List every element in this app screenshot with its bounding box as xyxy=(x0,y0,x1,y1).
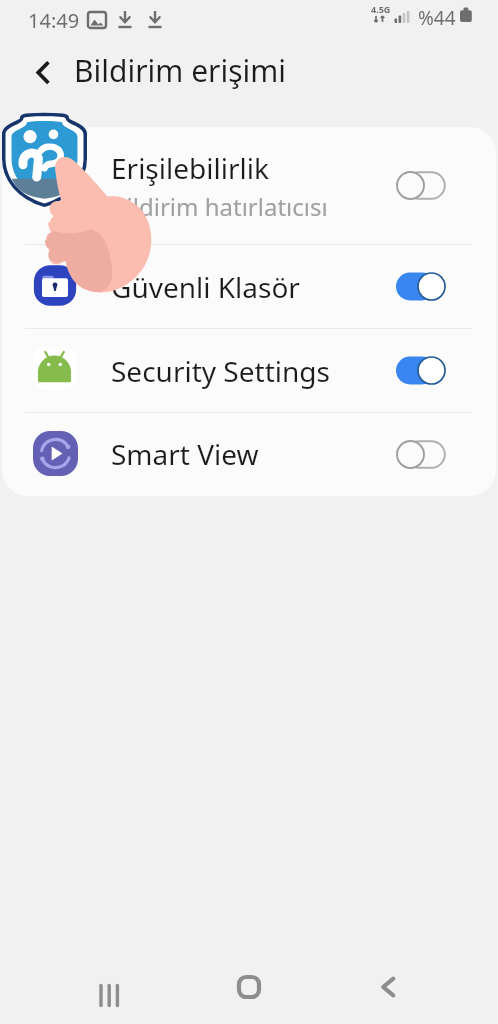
staticText: 4.5G xyxy=(371,3,391,15)
button[interactable]: Erişilebilirlik xyxy=(2,127,496,244)
button[interactable]: Home xyxy=(209,950,289,1024)
button[interactable]: Güvenli Klasör xyxy=(2,244,496,329)
button[interactable]: Back xyxy=(348,950,428,1024)
staticText: 14:49 xyxy=(28,7,80,34)
button[interactable]: Smart View xyxy=(2,412,496,496)
staticText: Güvenli Klasör xyxy=(111,268,300,306)
staticText: Smart View xyxy=(111,435,259,473)
button[interactable]: Switch off xyxy=(396,171,446,200)
button[interactable]: Navigate up xyxy=(22,48,64,90)
button[interactable]: Recent apps xyxy=(70,950,150,1024)
staticText: %44 xyxy=(418,5,456,31)
staticText: Bildirim hatırlatıcısı xyxy=(111,190,328,223)
button[interactable]: Security Settings xyxy=(2,329,496,412)
button[interactable]: Switch on xyxy=(396,272,446,301)
staticText: Security Settings xyxy=(111,352,330,390)
staticText: Erişilebilirlik xyxy=(111,149,269,187)
staticText: Bildirim erişimi xyxy=(74,50,287,91)
button[interactable]: Switch off xyxy=(396,440,446,469)
button[interactable]: Switch on xyxy=(396,356,446,385)
